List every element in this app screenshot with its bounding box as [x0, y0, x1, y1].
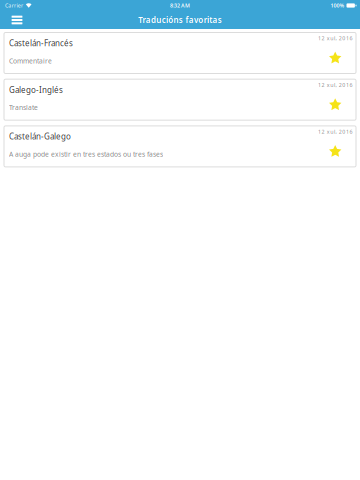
staticText: Traducións favoritas	[138, 15, 222, 25]
button[interactable]: Castelán-Francés	[4, 32, 356, 73]
staticText: 12 xul, 2016	[318, 128, 352, 135]
staticText: 12 xul, 2016	[318, 81, 352, 89]
staticText: Carrier	[5, 2, 23, 9]
button[interactable]: Menu	[8, 13, 26, 27]
staticText: 8:32 AM	[170, 2, 190, 9]
staticText: Translate	[9, 103, 38, 112]
staticText: Castelán-Galego	[9, 131, 71, 142]
staticText: Galego-Inglés	[9, 84, 63, 95]
staticText: 100%	[330, 2, 344, 9]
staticText: 12 xul, 2016	[318, 35, 352, 42]
button[interactable]: Galego-Inglés	[4, 79, 356, 120]
staticText: A auga pode existir en tres estados ou t…	[9, 150, 163, 159]
staticText: Castelán-Francés	[9, 38, 73, 48]
staticText: Commentaire	[9, 56, 52, 65]
button[interactable]: Castelán-Galego	[4, 126, 356, 167]
